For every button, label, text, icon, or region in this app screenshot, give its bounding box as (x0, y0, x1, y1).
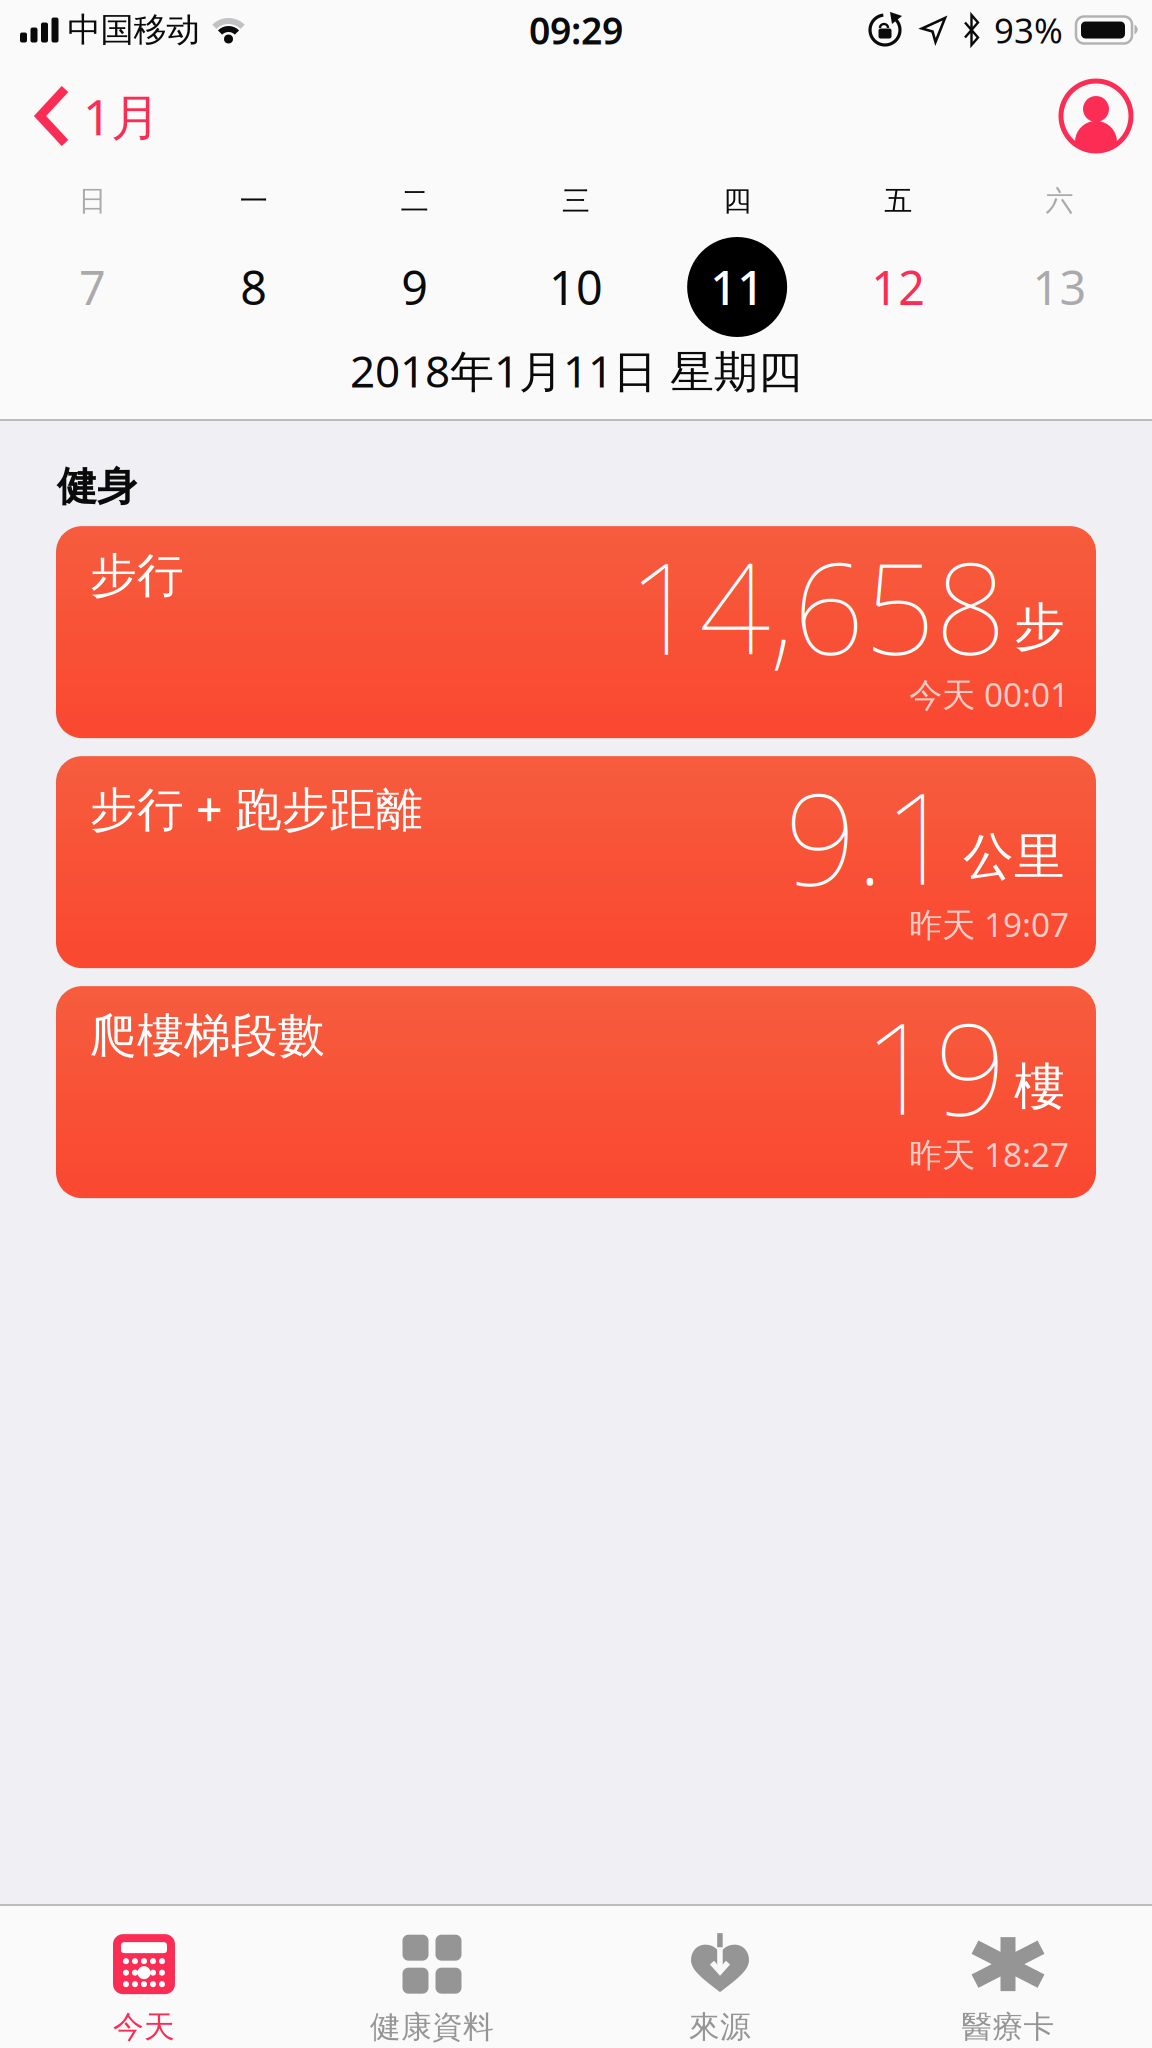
button[interactable]: 爬樓梯段數 (56, 986, 1096, 1198)
staticText: 11 (710, 256, 764, 318)
button[interactable]: 8 (173, 256, 334, 318)
staticText: 健康資料 (370, 2008, 494, 2046)
button[interactable] (1061, 81, 1131, 151)
staticText: 13 (1032, 256, 1086, 318)
staticText: 昨天 19:07 (909, 902, 1069, 946)
staticText: 10 (549, 256, 603, 318)
staticText: 日 (79, 184, 107, 218)
button[interactable]: 13 (979, 256, 1140, 318)
staticText: 健身 (57, 462, 137, 511)
staticText: 樓 (1014, 1056, 1065, 1118)
button[interactable]: 11 (657, 237, 818, 337)
staticText: 中国移动 (67, 9, 199, 50)
staticText: 19 (864, 983, 1006, 1149)
button[interactable]: 醫療卡 (864, 1908, 1152, 2046)
staticText: 來源 (689, 2008, 751, 2046)
staticText: 9.1 (785, 753, 955, 919)
button[interactable]: 步行 (56, 526, 1096, 738)
button[interactable]: 10 (495, 256, 656, 318)
staticText: 12 (871, 256, 925, 318)
button[interactable]: 9 (334, 256, 495, 318)
staticText: 步行 + 跑步距離 (90, 777, 423, 839)
staticText: 昨天 18:27 (909, 1132, 1069, 1176)
staticText: 公里 (963, 826, 1065, 888)
staticText: 二 (401, 184, 429, 218)
button[interactable]: 7 (12, 256, 173, 318)
button[interactable]: 健康資料 (288, 1908, 576, 2046)
staticText: 93% (994, 7, 1063, 53)
staticText: 爬樓梯段數 (90, 1007, 325, 1064)
staticText: 09:29 (529, 5, 623, 55)
staticText: 五 (884, 184, 912, 218)
staticText: 三 (562, 184, 590, 218)
staticText: 六 (1045, 184, 1073, 218)
button[interactable]: 來源 (576, 1908, 864, 2046)
staticText: 9 (401, 256, 428, 318)
staticText: 一 (240, 184, 268, 218)
button[interactable]: 今天 (0, 1908, 288, 2046)
button[interactable]: 12 (818, 256, 979, 318)
staticText: 1月 (83, 83, 160, 149)
staticText: 今天 00:01 (909, 672, 1069, 716)
staticText: 14,658 (628, 523, 1006, 689)
staticText: 醫療卡 (961, 2008, 1054, 2046)
button[interactable]: 1月 (35, 83, 160, 149)
staticText: 步 (1014, 596, 1065, 658)
button[interactable]: 步行 + 跑步距離 (56, 756, 1096, 968)
staticText: 今天 (113, 2008, 175, 2046)
staticText: 7 (79, 256, 106, 318)
staticText: 四 (723, 184, 751, 218)
staticText: 2018年1月11日 星期四 (350, 341, 802, 400)
staticText: 步行 (90, 547, 184, 604)
staticText: 8 (240, 256, 267, 318)
